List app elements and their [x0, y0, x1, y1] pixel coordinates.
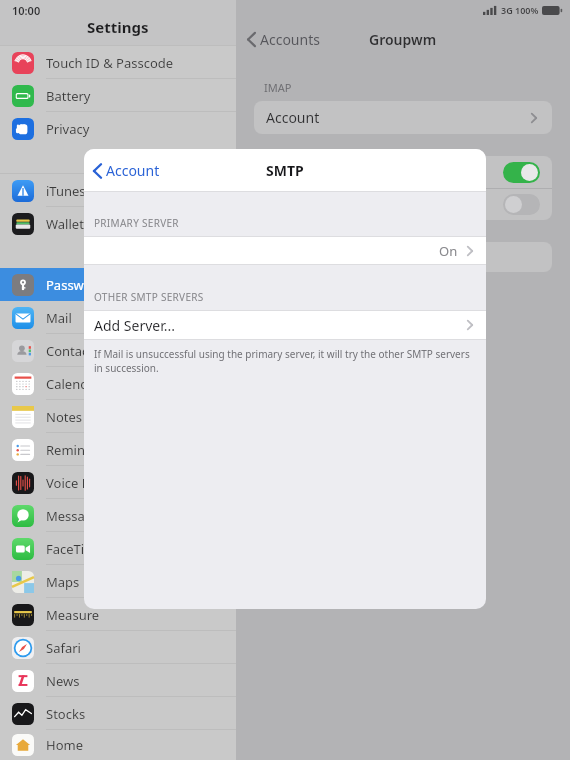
button[interactable]: News: [0, 664, 236, 697]
button[interactable]: Back to Accounts: [246, 30, 320, 49]
button[interactable]: Notes: [0, 400, 236, 433]
staticText: Add Server...: [94, 316, 175, 335]
staticText: Groupwm: [369, 30, 437, 49]
button[interactable]: iTunes & App Store: [0, 174, 236, 207]
staticText: Passwords & Accounts: [46, 276, 183, 294]
staticText: iTunes & App Store: [46, 182, 162, 200]
staticText: Voice Memos: [46, 474, 128, 492]
staticText: Stocks: [46, 705, 86, 723]
staticText: Home: [46, 736, 83, 754]
staticText: Mail: [46, 309, 72, 327]
staticText: Measure: [46, 606, 100, 624]
staticText: Reminders: [46, 441, 112, 459]
staticText: 3G 100%: [501, 4, 539, 16]
button[interactable]: Add Server...: [84, 311, 486, 339]
button[interactable]: Calendar: [0, 367, 236, 400]
staticText: PRIMARY SERVER: [94, 216, 179, 230]
staticText: Messages: [46, 507, 107, 525]
staticText: Contacts: [46, 342, 100, 360]
button[interactable]: Privacy: [0, 112, 236, 145]
staticText: Account: [266, 108, 320, 127]
button[interactable]: [254, 242, 552, 272]
button[interactable]: Measure: [0, 598, 236, 631]
staticText: IMAP: [264, 80, 292, 95]
button[interactable]: Back to Account: [92, 161, 160, 180]
button[interactable]: Battery: [0, 79, 236, 112]
staticText: News: [46, 672, 80, 690]
button[interactable]: Passwords & Accounts: [0, 268, 236, 301]
staticText: 10:00: [12, 3, 41, 18]
staticText: OTHER SMTP SERVERS: [94, 290, 204, 304]
button[interactable]: FaceTime: [0, 532, 236, 565]
staticText: Accounts: [260, 30, 320, 49]
button[interactable]: Messages: [0, 499, 236, 532]
staticText: Battery: [46, 87, 91, 105]
button[interactable]: [254, 189, 552, 220]
button[interactable]: Mail: [0, 301, 236, 334]
staticText: On: [439, 242, 458, 260]
button[interactable]: Account: [254, 101, 552, 134]
button[interactable]: Reminders: [0, 433, 236, 466]
staticText: FaceTime: [46, 540, 104, 558]
staticText: Safari: [46, 639, 81, 657]
staticText: Settings: [87, 17, 149, 37]
staticText: Touch ID & Passcode: [46, 54, 174, 72]
button[interactable]: Safari: [0, 631, 236, 664]
staticText: SMTP: [266, 161, 304, 180]
staticText: Maps: [46, 573, 80, 591]
button[interactable]: [254, 156, 552, 188]
button[interactable]: Home: [0, 730, 236, 760]
button[interactable]: Maps: [0, 565, 236, 598]
button[interactable]: Stocks: [0, 697, 236, 730]
staticText: Account: [106, 161, 160, 180]
button[interactable]: Voice Memos: [0, 466, 236, 499]
staticText: Wallet & Apple Pay: [46, 215, 161, 233]
staticText: If Mail is unsuccessful using the primar…: [94, 347, 472, 375]
button[interactable]: On: [84, 237, 486, 264]
staticText: Calendar: [46, 375, 101, 393]
button[interactable]: Touch ID & Passcode: [0, 46, 236, 79]
button[interactable]: Wallet & Apple Pay: [0, 207, 236, 240]
button[interactable]: Contacts: [0, 334, 236, 367]
staticText: Notes: [46, 408, 82, 426]
staticText: Privacy: [46, 120, 90, 138]
